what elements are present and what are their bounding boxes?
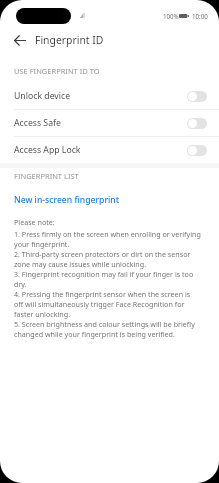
button[interactable]: Back bbox=[6, 26, 34, 54]
staticText: Please note: bbox=[14, 217, 55, 227]
staticText: FINGERPRINT LIST bbox=[14, 171, 79, 181]
staticText: Access App Lock bbox=[14, 144, 81, 156]
button[interactable]: Access Safe bbox=[0, 110, 219, 136]
button[interactable]: Unlock device bbox=[0, 83, 219, 109]
staticText: 100% bbox=[163, 12, 179, 20]
button[interactable]: New in-screen fingerprint bbox=[0, 188, 219, 212]
staticText: Fingerprint ID bbox=[35, 33, 104, 47]
staticText: Unlock device bbox=[14, 90, 71, 102]
staticText: Access Safe bbox=[14, 117, 61, 129]
other: Signal strength bbox=[80, 13, 85, 18]
staticText: 1. Press firmly on the screen when enrol… bbox=[14, 229, 201, 339]
staticText: New in-screen fingerprint bbox=[14, 194, 120, 206]
button[interactable]: Access App Lock bbox=[0, 137, 219, 163]
staticText: 10:00 bbox=[192, 12, 208, 20]
staticText: USE FINGERPRINT ID TO bbox=[14, 66, 100, 76]
